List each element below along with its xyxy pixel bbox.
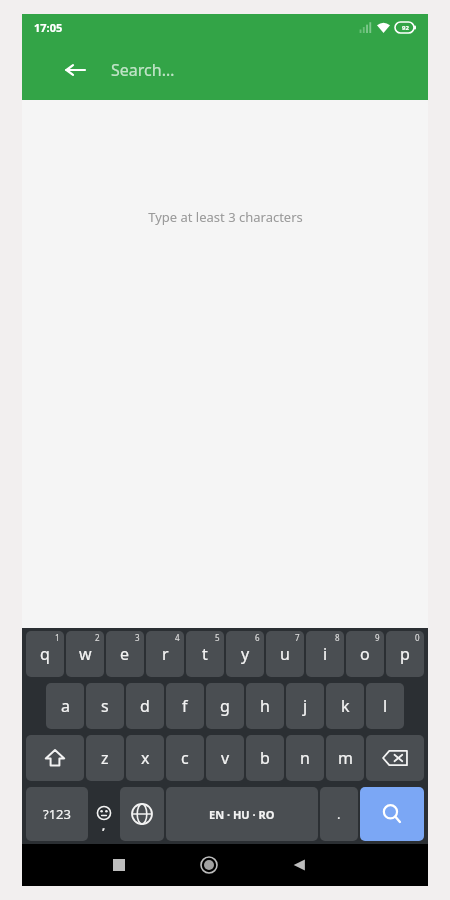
button[interactable]: o xyxy=(346,631,384,677)
button[interactable]: s xyxy=(86,683,124,729)
staticText: p xyxy=(400,643,410,665)
staticText: , xyxy=(102,818,106,833)
staticText: h xyxy=(260,695,270,717)
staticText: b xyxy=(260,747,270,769)
staticText: e xyxy=(120,643,130,665)
staticText: 4 xyxy=(175,632,180,643)
button[interactable]: Emoji xyxy=(89,784,119,844)
button[interactable]: g xyxy=(206,683,244,729)
staticText: 7 xyxy=(295,632,300,643)
button[interactable]: Back xyxy=(279,845,319,885)
staticText: EN · HU · RO xyxy=(209,807,275,822)
staticText: 3 xyxy=(135,632,140,643)
staticText: 6 xyxy=(255,632,260,643)
button[interactable]: q xyxy=(26,631,64,677)
button[interactable]: y xyxy=(226,631,264,677)
staticText: 8 xyxy=(335,632,340,643)
staticText: k xyxy=(341,695,350,717)
staticText: 9 xyxy=(375,632,380,643)
staticText: t xyxy=(202,643,208,665)
button[interactable]: p xyxy=(386,631,424,677)
staticText: 1 xyxy=(55,632,60,643)
button[interactable]: n xyxy=(286,735,324,781)
staticText: n xyxy=(300,747,310,769)
staticText: i xyxy=(323,643,328,665)
staticText: 17:05 xyxy=(34,20,63,35)
staticText: d xyxy=(140,695,150,717)
button[interactable]: Language xyxy=(120,787,164,841)
button[interactable]: Backspace xyxy=(366,735,424,781)
button[interactable]: h xyxy=(246,683,284,729)
button[interactable]: k xyxy=(326,683,364,729)
staticText: 2 xyxy=(95,632,100,643)
button[interactable]: r xyxy=(146,631,184,677)
staticText: o xyxy=(360,643,370,665)
button[interactable]: u xyxy=(266,631,304,677)
staticText: 92 xyxy=(402,24,409,32)
staticText: j xyxy=(303,695,308,717)
button[interactable]: j xyxy=(286,683,324,729)
staticText: 0 xyxy=(415,632,420,643)
button[interactable]: e xyxy=(106,631,144,677)
button[interactable]: Search xyxy=(360,787,424,841)
button[interactable]: Shift xyxy=(26,735,84,781)
button[interactable]: d xyxy=(126,683,164,729)
staticText: g xyxy=(220,695,230,717)
staticText: f xyxy=(182,695,188,717)
button[interactable]: m xyxy=(326,735,364,781)
button[interactable]: EN · HU · RO xyxy=(166,787,318,841)
staticText: m xyxy=(338,747,353,769)
button[interactable]: c xyxy=(166,735,204,781)
button[interactable]: i xyxy=(306,631,344,677)
staticText: ?123 xyxy=(43,805,71,823)
button[interactable]: Home xyxy=(189,845,229,885)
button[interactable]: t xyxy=(186,631,224,677)
staticText: a xyxy=(61,695,70,717)
staticText: y xyxy=(241,643,250,665)
staticText: w xyxy=(79,643,92,665)
staticText: . xyxy=(337,805,341,823)
button[interactable]: b xyxy=(246,735,284,781)
button[interactable]: ?123 xyxy=(26,787,88,841)
button[interactable]: w xyxy=(66,631,104,677)
staticText: l xyxy=(383,695,388,717)
button[interactable]: f xyxy=(166,683,204,729)
staticText: Search… xyxy=(111,59,175,81)
staticText: 5 xyxy=(215,632,220,643)
button[interactable]: v xyxy=(206,735,244,781)
staticText: s xyxy=(101,695,109,717)
staticText: c xyxy=(181,747,189,769)
staticText: Type at least 3 characters xyxy=(148,208,303,226)
staticText: q xyxy=(40,643,50,665)
staticText: r xyxy=(162,643,169,665)
button[interactable]: a xyxy=(46,683,84,729)
button[interactable]: Recents xyxy=(99,845,139,885)
staticText: x xyxy=(141,747,150,769)
button[interactable]: . xyxy=(320,787,358,841)
button[interactable]: x xyxy=(126,735,164,781)
button[interactable]: l xyxy=(366,683,404,729)
staticText: z xyxy=(101,747,109,769)
button[interactable]: Search… xyxy=(92,40,428,100)
staticText: v xyxy=(221,747,230,769)
staticText: u xyxy=(280,643,290,665)
button[interactable]: z xyxy=(86,735,124,781)
button[interactable]: Back xyxy=(58,53,92,87)
